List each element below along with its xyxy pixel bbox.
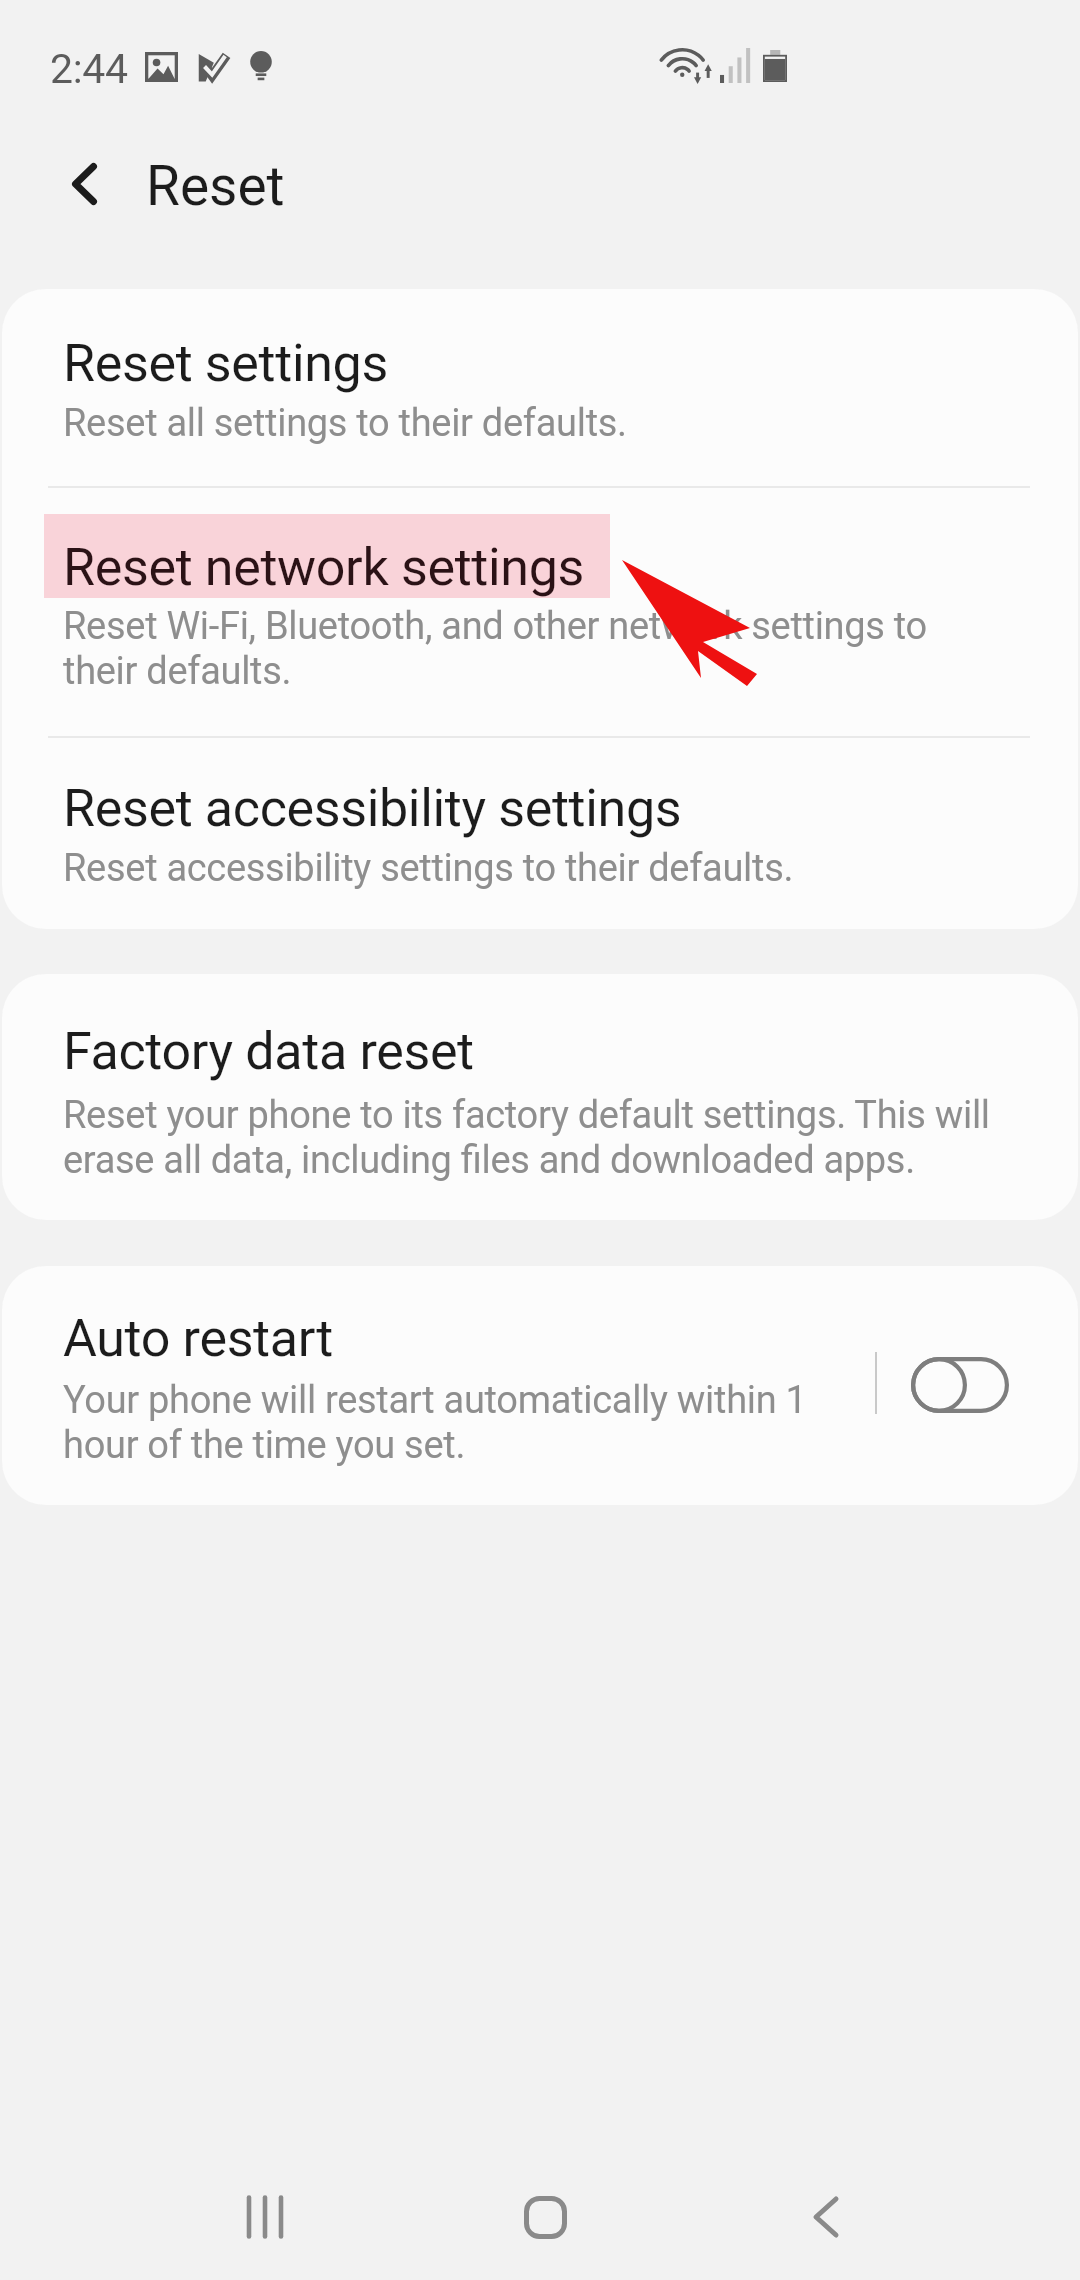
staticText: Reset all settings to their defaults. <box>63 400 1013 445</box>
button[interactable]: Back <box>754 2147 898 2280</box>
staticText: Reset your phone to its factory default … <box>63 1092 1013 1182</box>
staticText: Reset network settings <box>63 537 584 597</box>
staticText: 2:44 <box>50 45 128 93</box>
button[interactable]: Navigate up <box>42 142 126 226</box>
button[interactable] <box>2 1266 1078 1505</box>
staticText: Reset accessibility settings to their de… <box>63 845 1013 890</box>
staticText: Auto restart <box>63 1308 853 1368</box>
button[interactable]: Home <box>473 2147 617 2280</box>
staticText: Factory data reset <box>63 1021 1013 1081</box>
button[interactable] <box>2 289 1078 484</box>
staticText: Reset <box>146 154 285 218</box>
staticText: Reset Wi-Fi, Bluetooth, and other networ… <box>63 603 993 693</box>
button[interactable] <box>2 486 1078 734</box>
button[interactable] <box>2 736 1078 929</box>
button[interactable]: Recent apps <box>195 2147 339 2280</box>
staticText: Reset accessibility settings <box>63 778 1013 838</box>
staticText: Your phone will restart automatically wi… <box>63 1377 853 1467</box>
button[interactable] <box>2 974 1078 1220</box>
button[interactable]: Auto restart toggle <box>911 1357 1009 1413</box>
staticText: Reset settings <box>63 333 1013 393</box>
